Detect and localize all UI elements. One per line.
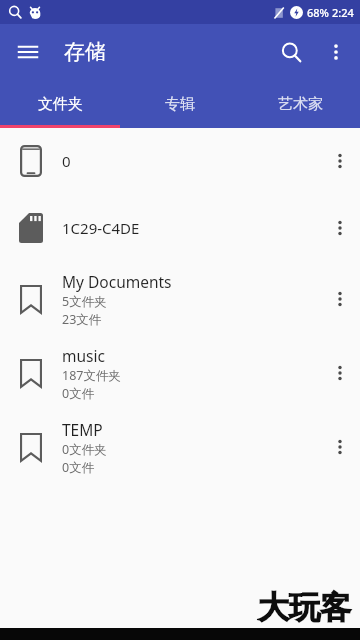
staticText: 68% (307, 5, 329, 20)
staticText: 文件夹 (38, 95, 83, 114)
button[interactable]: Item options (320, 410, 360, 484)
button[interactable]: Item options (320, 194, 360, 262)
staticText: 0文件夹 (62, 441, 107, 458)
button[interactable]: More options (314, 30, 358, 74)
staticText: 23文件 (62, 311, 102, 328)
staticText: TEMP (62, 419, 103, 440)
button[interactable]: 艺术家 (240, 80, 360, 128)
button[interactable]: My Documents (0, 262, 360, 336)
staticText: 5文件夹 (62, 293, 107, 310)
button[interactable]: Item options (320, 262, 360, 336)
button[interactable]: Open navigation drawer (6, 30, 50, 74)
button[interactable]: Search (268, 29, 314, 75)
staticText: 2:24 (332, 5, 354, 20)
button[interactable]: 1C29-C4DE (0, 194, 360, 262)
button[interactable]: 专辑 (120, 80, 240, 128)
staticText: My Documents (62, 271, 172, 292)
staticText: 存储 (64, 39, 106, 65)
staticText: 0 (62, 151, 71, 171)
staticText: 大玩客 (258, 588, 351, 627)
button[interactable]: Item options (320, 336, 360, 410)
button[interactable]: TEMP (0, 410, 360, 484)
staticText: music (62, 345, 105, 366)
staticText: 专辑 (165, 95, 195, 114)
staticText: 0文件 (62, 459, 95, 476)
button[interactable]: Item options (320, 128, 360, 194)
button[interactable]: 0 (0, 128, 360, 194)
staticText: 艺术家 (278, 95, 323, 114)
button[interactable]: music (0, 336, 360, 410)
button[interactable]: 文件夹 (0, 80, 120, 128)
staticText: 187文件夹 (62, 367, 121, 384)
staticText: 0文件 (62, 385, 95, 402)
staticText: 1C29-C4DE (62, 218, 140, 238)
